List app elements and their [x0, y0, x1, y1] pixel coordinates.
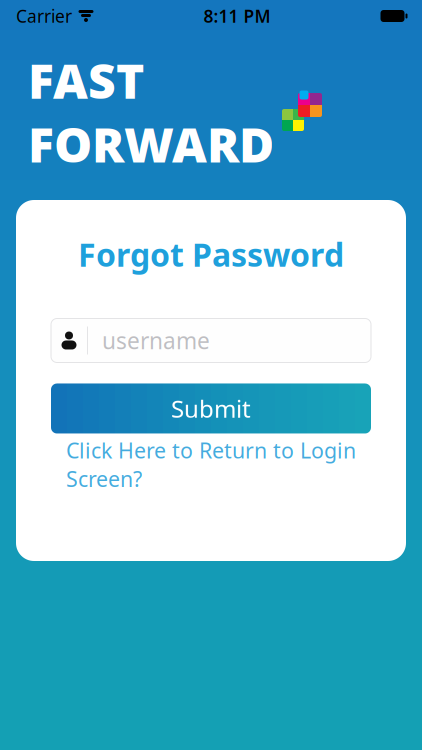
- staticText: Submit: [171, 393, 251, 424]
- button[interactable]: username: [51, 318, 371, 362]
- staticText: FAST FORWARD: [28, 48, 274, 176]
- button[interactable]: Submit: [51, 383, 371, 433]
- staticText: Click Here to Return to Login Screen?: [66, 436, 356, 493]
- staticText: username: [102, 325, 210, 355]
- staticText: Forgot Password: [78, 233, 344, 275]
- staticText: Carrier: [16, 4, 72, 27]
- button[interactable]: Click Here to Return to Login Screen?: [46, 448, 376, 480]
- staticText: 8:11 PM: [203, 4, 270, 27]
